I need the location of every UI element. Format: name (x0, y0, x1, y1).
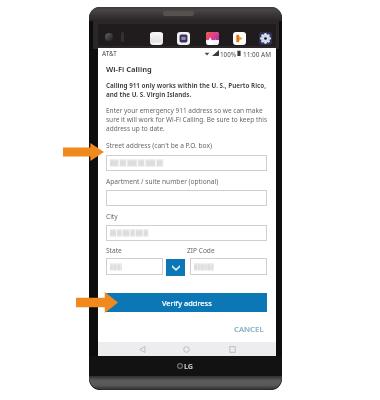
staticText: Wi-Fi Calling (106, 64, 152, 74)
button[interactable]: Recent apps (225, 342, 239, 356)
button[interactable]: Text field (190, 258, 267, 275)
button[interactable]: Media player (233, 32, 246, 45)
staticText: address up to date. (106, 124, 165, 133)
staticText: and the U. S. Virgin Islands. (106, 90, 192, 99)
staticText: Apartment / suite number (optional) (106, 177, 219, 186)
staticText: Street address (can't be a P.O. box) (106, 141, 212, 150)
staticText: Enter your emergency 911 address so we c… (106, 106, 263, 115)
staticText: State (106, 246, 122, 255)
staticText: CANCEL (234, 324, 264, 335)
button[interactable]: Home (179, 342, 193, 356)
staticText: ZIP Code (187, 246, 215, 255)
staticText: City (106, 212, 118, 221)
staticText: 100% (220, 50, 237, 59)
button[interactable]: Text field (106, 190, 267, 206)
button[interactable]: Verify address (106, 293, 267, 312)
staticText: LG (184, 361, 194, 371)
button[interactable]: Settings (259, 32, 272, 45)
staticText: 11:00 AM (243, 50, 272, 59)
button[interactable]: Text field (106, 258, 163, 275)
button[interactable]: Recent apps (150, 32, 163, 45)
staticText: sure it will work for Wi-Fi Calling. Be … (106, 115, 268, 124)
button[interactable]: Gallery (206, 32, 219, 45)
staticText: AT&T (102, 49, 117, 58)
button[interactable]: Select state (166, 259, 185, 276)
button[interactable]: Photos app (177, 32, 190, 45)
button[interactable]: Text field (106, 225, 267, 241)
button[interactable]: Back (135, 342, 149, 356)
button[interactable]: CANCEL (230, 322, 268, 336)
staticText: Verify address (162, 298, 212, 308)
button[interactable]: Text field (106, 155, 267, 171)
staticText: Calling 911 only works within the U. S.,… (106, 81, 267, 90)
